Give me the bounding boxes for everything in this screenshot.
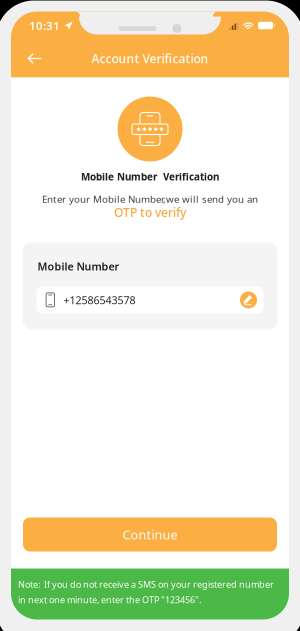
staticText: 10:31 xyxy=(29,18,60,33)
staticText: Mobile Number xyxy=(37,259,119,273)
staticText: +12586543578 xyxy=(63,293,135,307)
button[interactable]: Continue xyxy=(23,517,277,551)
button[interactable]: Back xyxy=(18,43,52,73)
staticText: Mobile Number Verification xyxy=(81,170,219,183)
staticText: OTP to verify xyxy=(114,204,186,220)
staticText: Account Verification xyxy=(91,50,208,67)
staticText: Continue xyxy=(122,526,177,543)
staticText: Enter your Mobile Number,we will send yo… xyxy=(42,192,258,205)
staticText: in next one minute, enter the OTP "12345… xyxy=(18,593,201,606)
staticText: Note: If you do not receive a SMS on you… xyxy=(18,578,274,590)
button[interactable]: Edit phone number xyxy=(238,289,258,311)
